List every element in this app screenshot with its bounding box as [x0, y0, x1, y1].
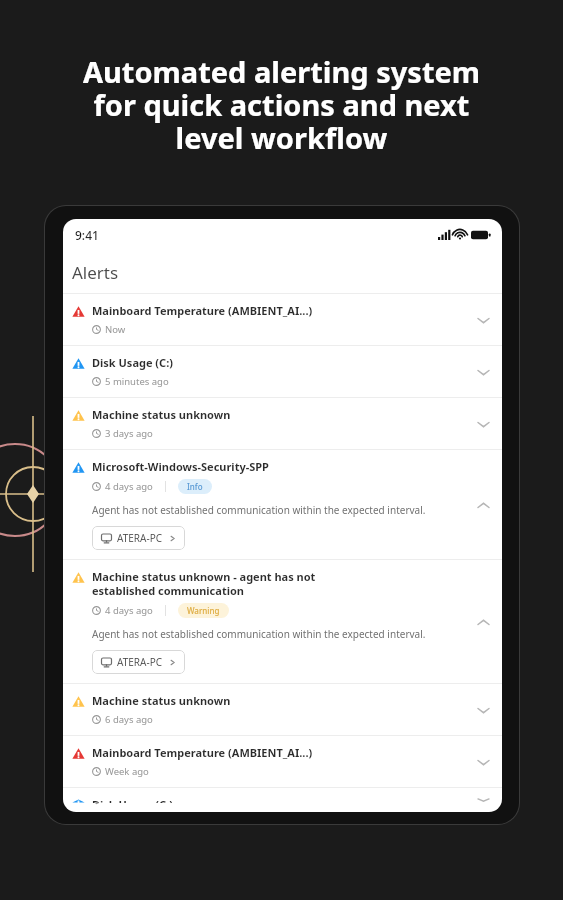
button[interactable]: Machine status unknown	[63, 684, 502, 735]
staticText: Now	[105, 323, 126, 336]
staticText: Disk Usage (C:)	[92, 355, 173, 370]
button[interactable]: Collapse	[470, 609, 496, 635]
button[interactable]: Collapse	[470, 492, 496, 518]
button[interactable]: Disk Usage (C:)	[63, 346, 502, 397]
staticText: Mainboard Temperature (AMBIENT_AI...)	[92, 745, 313, 760]
staticText: Machine status unknown - agent has not e…	[92, 569, 316, 598]
button[interactable]: Expand	[470, 411, 496, 437]
button[interactable]: Mainboard Temperature (AMBIENT_AI...)	[63, 294, 502, 345]
button[interactable]: Expand	[470, 749, 496, 775]
staticText: Machine status unknown	[92, 407, 231, 422]
staticText: Disk Usage (C:)	[92, 797, 173, 803]
button[interactable]: Expand	[470, 797, 496, 803]
button[interactable]: Expand	[470, 359, 496, 385]
button[interactable]: Expand	[470, 307, 496, 333]
staticText: 3 days ago	[105, 427, 153, 440]
staticText: 6 days ago	[105, 713, 153, 726]
staticText: ATERA-PC	[117, 531, 163, 545]
staticText: Agent has not established communication …	[92, 503, 426, 517]
staticText: Warning	[187, 605, 220, 616]
button[interactable]: ATERA-PC	[92, 526, 185, 550]
button[interactable]: ATERA-PC	[92, 650, 185, 674]
staticText: Alerts	[72, 261, 119, 284]
staticText: Automated alerting system for quick acti…	[24, 52, 539, 157]
button[interactable]: Mainboard Temperature (AMBIENT_AI...)	[63, 736, 502, 787]
staticText: Mainboard Temperature (AMBIENT_AI...)	[92, 303, 313, 318]
staticText: Microsoft-Windows-Security-SPP	[92, 459, 269, 474]
staticText: 4 days ago	[105, 480, 153, 493]
button[interactable]: Expand	[470, 697, 496, 723]
button[interactable]: Disk Usage (C:)	[63, 788, 502, 812]
staticText: Info	[187, 481, 203, 492]
button[interactable]: Machine status unknown	[63, 398, 502, 449]
staticText: 9:41	[75, 227, 99, 243]
staticText: ATERA-PC	[117, 655, 163, 669]
staticText: Agent has not established communication …	[92, 627, 426, 641]
button[interactable]: Machine status unknown - agent has not e…	[63, 560, 502, 683]
staticText: Week ago	[105, 765, 149, 778]
staticText: 5 minutes ago	[105, 375, 169, 388]
staticText: Machine status unknown	[92, 693, 231, 708]
button[interactable]: Microsoft-Windows-Security-SPP	[63, 450, 502, 559]
staticText: 4 days ago	[105, 604, 153, 617]
